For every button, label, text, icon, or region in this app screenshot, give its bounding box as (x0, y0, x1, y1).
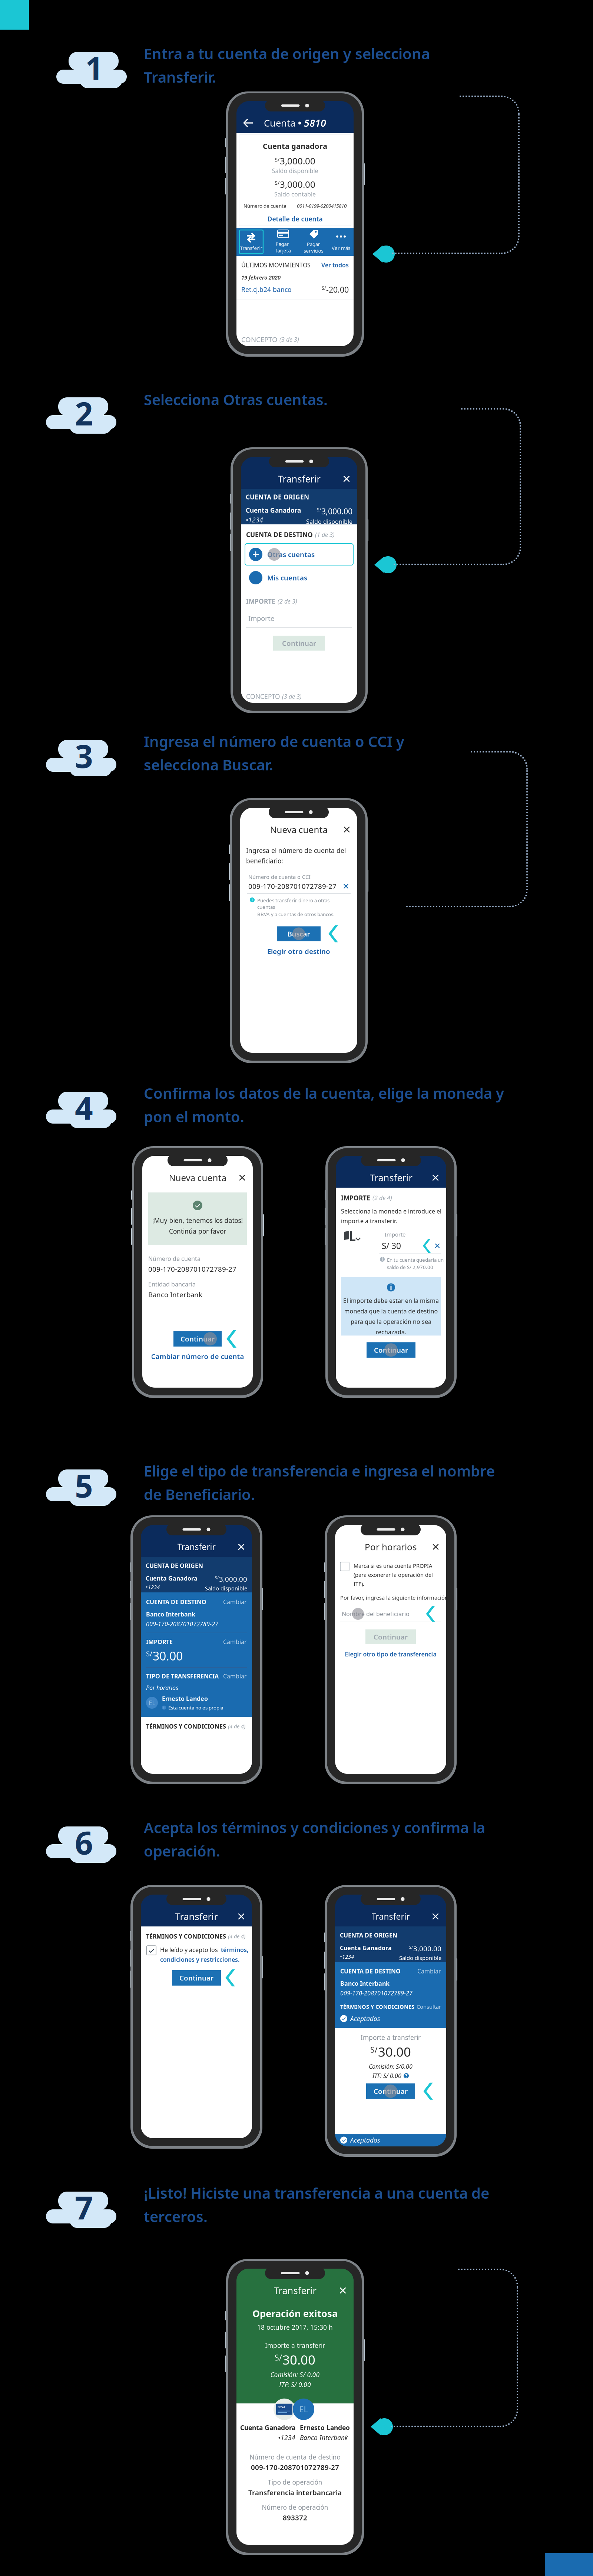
button[interactable]: Cambiar (417, 1967, 441, 1975)
button[interactable]: Cerrar (339, 822, 357, 837)
button[interactable]: Detalle de cuenta (266, 213, 324, 225)
staticText: Transferir (240, 245, 263, 251)
button[interactable]: Cambiar (223, 1638, 247, 1646)
staticText: 6 (75, 1821, 93, 1863)
staticText: Otras cuentas (267, 550, 315, 559)
staticText: Pagar (307, 241, 320, 247)
staticText: Confirma los datos de la cuenta, elige l… (144, 1083, 504, 1103)
button[interactable]: Pagar tarjeta (271, 230, 296, 254)
staticText: i (382, 1256, 383, 1262)
staticText: terceros. (144, 2206, 208, 2226)
staticText: Cambiar (223, 1672, 247, 1680)
button[interactable]: Otras cuentas (241, 544, 357, 565)
staticText: rechazada. (376, 1328, 406, 1336)
staticText: En tu cuenta quedaría un (387, 1257, 444, 1263)
staticText: Banco Interbank (146, 1610, 195, 1618)
staticText: S/ (275, 179, 279, 186)
staticText: (3 de 3) (282, 692, 302, 700)
button[interactable]: Cerrar (429, 1540, 446, 1554)
staticText: S/ (322, 285, 326, 291)
staticText: Cambiar (417, 1967, 441, 1975)
staticText: Transferir (278, 473, 320, 485)
button[interactable]: Elegir otro tipo de transferencia (345, 1650, 436, 1658)
staticText: (4 de 4) (228, 1933, 245, 1940)
staticText: He leído y acepto los (160, 1946, 219, 1954)
staticText: EL (149, 1699, 155, 1707)
staticText: CONCEPTO (241, 335, 278, 344)
button[interactable]: Pagar (303, 230, 324, 254)
button[interactable]: Atrás (236, 116, 256, 130)
button[interactable]: Transferir (239, 230, 263, 254)
staticText: 009-170-208701072789-27 (148, 1264, 236, 1274)
staticText: Comisión: S/ 0.00 (270, 2370, 320, 2379)
staticText: 009-170-208701072789-27 (248, 882, 337, 891)
button[interactable]: Cambiar número de cuenta (151, 1352, 244, 1361)
button[interactable]: Continuar (172, 1970, 221, 1986)
staticText: 2 (75, 392, 93, 434)
button[interactable]: Buscar (277, 926, 321, 941)
button[interactable]: Borrar (343, 883, 349, 889)
staticText: Ingresa el número de cuenta o CCI y (144, 731, 404, 751)
button[interactable]: Cerrar (234, 1909, 252, 1923)
staticText: CUENTA DE DESTINO (340, 1967, 401, 1975)
button[interactable]: Cambiar (223, 1672, 247, 1680)
staticText: Detalle de cuenta (267, 215, 323, 223)
button[interactable]: Elegir otro destino (267, 947, 330, 956)
staticText: IMPORTE (146, 1638, 173, 1646)
staticText: Cuenta Ganadora (146, 1574, 198, 1582)
staticText: i (251, 896, 253, 902)
staticText: •1234 (278, 2433, 295, 2442)
staticText: ? (405, 2072, 407, 2079)
staticText: Número de cuenta de destino (250, 2453, 340, 2461)
staticText: 3,000.00 (413, 1944, 441, 1953)
button[interactable]: Ver más (331, 230, 351, 254)
staticText: Elegir otro tipo de transferencia (345, 1650, 436, 1658)
button[interactable]: Mis cuentas (241, 570, 357, 585)
staticText: Importe a transferir (361, 2033, 421, 2042)
staticText: •1234 (340, 1953, 354, 1960)
button[interactable]: Cerrar (339, 472, 357, 486)
button[interactable]: Cerrar (428, 1171, 446, 1185)
staticText: 30.00 (282, 2351, 315, 2368)
staticText: Continuar (179, 1973, 213, 1982)
button[interactable]: Cerrar (235, 1171, 253, 1185)
staticText: Cuenta Ganadora (240, 2423, 295, 2432)
button[interactable]: Continuar (366, 2083, 415, 2099)
staticText: ITF). (354, 1580, 364, 1587)
button[interactable]: Cerrar (340, 822, 357, 837)
button[interactable]: Continuar (367, 1342, 415, 1358)
staticText: Transferir. (144, 67, 216, 87)
button[interactable]: Cambiar (223, 1598, 247, 1606)
staticText: Por favor, ingresa la siguiente informac… (340, 1594, 450, 1601)
staticText: Transferencia interbancaria (248, 2488, 342, 2497)
staticText: Selecciona Otras cuentas. (144, 390, 328, 409)
staticText: Cambiar (223, 1598, 247, 1606)
staticText: 1 (85, 47, 103, 89)
button[interactable]: Continuar (173, 1331, 222, 1347)
staticText: ITF: S/ 0.00 (372, 2072, 401, 2080)
staticText: 009-170-208701072789-27 (340, 1989, 413, 1997)
button[interactable]: Cerrar (428, 1909, 446, 1923)
staticText: selecciona Buscar. (144, 755, 273, 774)
staticText: Elegir otro destino (267, 947, 330, 956)
button[interactable]: Ver todos (321, 261, 349, 269)
staticText: Operación exitosa (252, 2307, 338, 2320)
staticText: Ret.cj.b24 banco (241, 285, 291, 294)
staticText: IMPORTE (341, 1194, 370, 1202)
button[interactable]: Consultar (417, 2003, 441, 2010)
staticText: Continuar (374, 2087, 408, 2096)
staticText: Continuar (374, 1632, 408, 1641)
staticText: 0011-0199-0200415810 (297, 202, 347, 209)
staticText: Ernesto Landeo (300, 2423, 350, 2432)
button[interactable]: Cerrar (428, 1540, 446, 1554)
staticText: Transferir (372, 1911, 410, 1922)
staticText: CUENTA DE DESTINO (146, 1598, 206, 1606)
staticText: Por horarios (146, 1684, 178, 1692)
button[interactable]: Cerrar (234, 1540, 252, 1554)
staticText: 3,000.00 (280, 155, 315, 167)
staticText: TÉRMINOS Y CONDICIONES (340, 2003, 414, 2010)
staticText: Continúa por favor (169, 1227, 226, 1235)
button[interactable]: Cerrar (336, 2283, 354, 2298)
button[interactable]: Cerrar (235, 1171, 253, 1185)
staticText: servicios (304, 247, 323, 254)
